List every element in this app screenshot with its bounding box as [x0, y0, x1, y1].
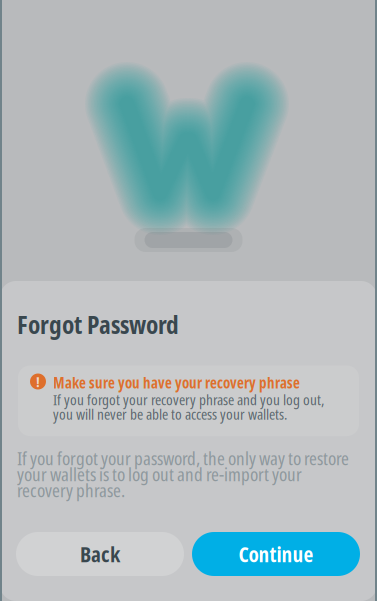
- button[interactable]: Continue: [192, 532, 360, 576]
- staticText: recovery phrase.: [17, 477, 125, 503]
- staticText: !: [36, 371, 40, 391]
- staticText: Back: [80, 539, 120, 569]
- staticText: your wallets is to log out and re-import…: [17, 461, 302, 487]
- staticText: you will never be able to access your wa…: [53, 403, 287, 424]
- staticText: If you forgot your password, the only wa…: [17, 445, 349, 471]
- staticText: Make sure you have your recovery phrase: [53, 372, 300, 393]
- staticText: Continue: [238, 539, 313, 569]
- staticText: If you forgot your recovery phrase and y…: [53, 389, 324, 409]
- button[interactable]: Back: [16, 532, 184, 576]
- staticText: Forgot Password: [17, 307, 179, 341]
